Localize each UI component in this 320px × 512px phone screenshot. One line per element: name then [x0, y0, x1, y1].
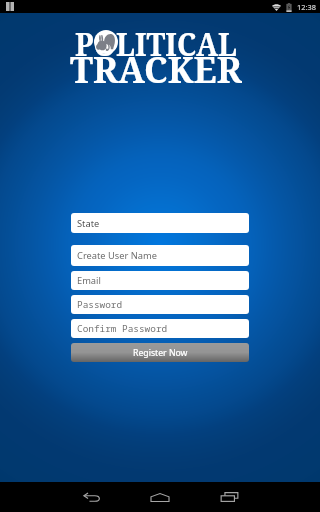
staticText: POLITICAL: [75, 22, 237, 65]
button[interactable]: Home: [140, 482, 180, 512]
staticText: Create User Name: [77, 249, 157, 262]
staticText: Email: [77, 274, 101, 287]
staticText: Password: [77, 298, 123, 311]
staticText: Confirm Password: [77, 322, 168, 335]
staticText: TRACKER: [70, 45, 242, 94]
button[interactable]: Confirm Password: [71, 319, 249, 338]
button[interactable]: Password: [71, 295, 249, 314]
button[interactable]: Back: [72, 482, 112, 512]
button[interactable]: Create User Name: [71, 245, 249, 266]
button[interactable]: Email: [71, 271, 249, 290]
button[interactable]: State: [71, 213, 249, 233]
staticText: 12:38: [297, 2, 316, 12]
button[interactable]: Recent apps: [209, 482, 249, 512]
button[interactable]: Register Now: [71, 343, 249, 362]
staticText: Register Now: [133, 347, 188, 359]
staticText: State: [77, 217, 100, 230]
